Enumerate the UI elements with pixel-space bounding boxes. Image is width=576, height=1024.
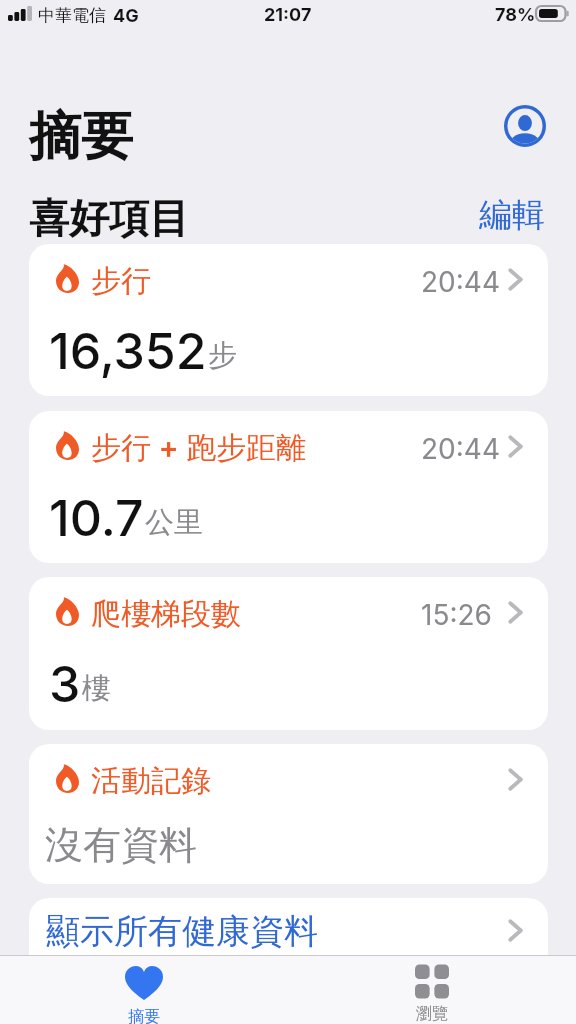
staticText: 樓 <box>82 670 111 707</box>
staticText: 21:07 <box>264 4 312 26</box>
staticText: 瀏覽 <box>416 1004 448 1024</box>
staticText: 活動記錄 <box>91 762 211 800</box>
staticText: 10.7 <box>49 488 144 548</box>
staticText: 中華電信 <box>38 5 106 26</box>
staticText: 16,352 <box>49 321 207 381</box>
button[interactable]: 喜好項目 <box>29 193 189 243</box>
staticText: 15:26 <box>421 598 492 632</box>
staticText: 沒有資料 <box>45 821 197 869</box>
staticText: 編輯 <box>479 194 545 236</box>
button[interactable]: 摘要 <box>0 966 288 1024</box>
button[interactable]: 編輯 <box>479 194 545 236</box>
button[interactable]: 步行 <box>29 244 548 396</box>
button[interactable]: 爬樓梯段數 <box>29 577 548 730</box>
staticText: 顯示所有健康資料 <box>46 910 318 953</box>
staticText: 20:44 <box>421 432 500 466</box>
staticText: 3 <box>49 654 81 714</box>
button[interactable]: 瀏覽 <box>288 966 576 1024</box>
button[interactable]: Profile <box>504 105 546 147</box>
staticText: 78% <box>495 4 536 26</box>
staticText: 公里 <box>145 504 203 541</box>
staticText: 步行 <box>91 262 151 300</box>
staticText: 4G <box>113 5 139 27</box>
staticText: 摘要 <box>29 104 133 170</box>
staticText: 爬樓梯段數 <box>91 595 241 633</box>
staticText: 喜好項目 <box>29 193 189 243</box>
button[interactable]: 活動記錄 <box>29 744 548 884</box>
staticText: 摘要 <box>128 1007 160 1024</box>
staticText: 步 <box>208 337 237 374</box>
staticText: 20:44 <box>421 265 500 299</box>
button[interactable]: 步行 + 跑步距離 <box>29 411 548 563</box>
button[interactable]: 顯示所有健康資料 <box>29 898 548 1000</box>
staticText: 步行 + 跑步距離 <box>91 429 307 467</box>
